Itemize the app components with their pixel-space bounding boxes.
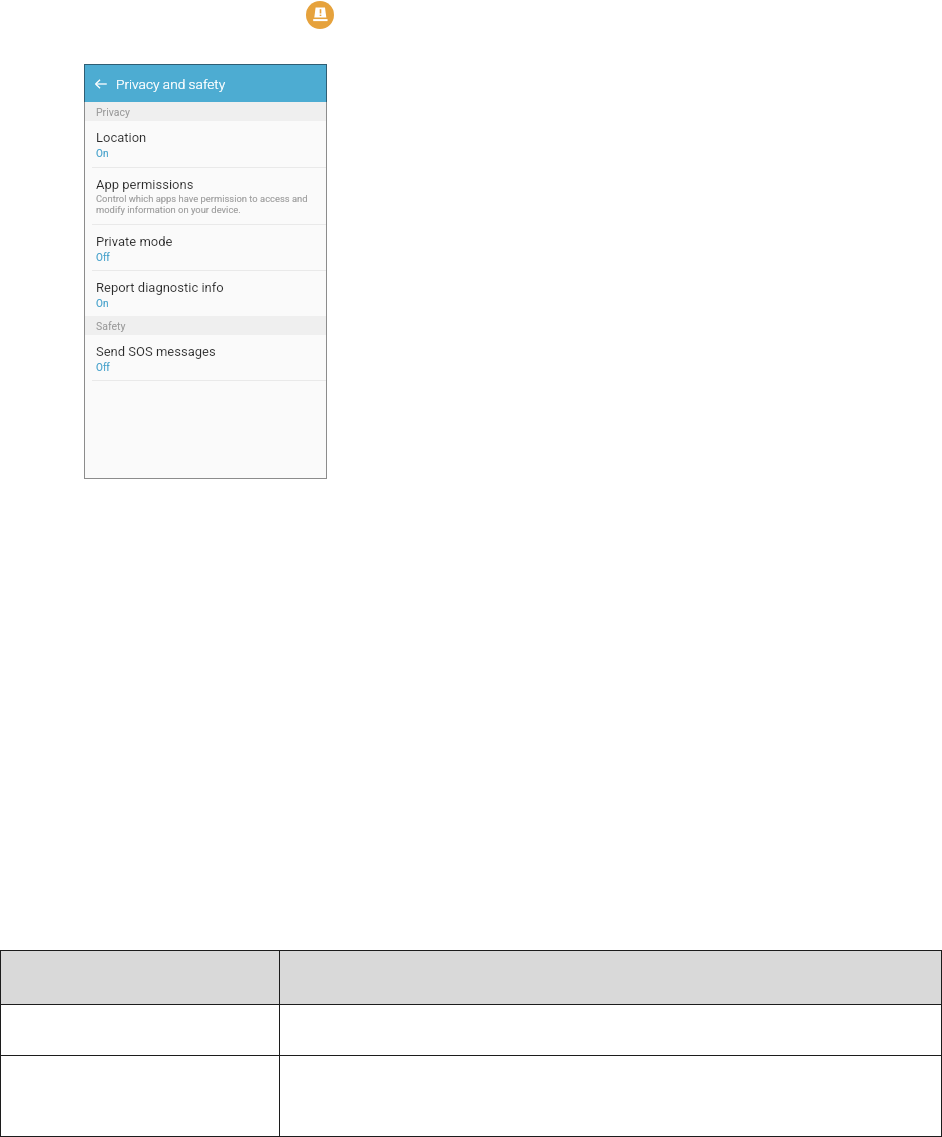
- staticText: On: [96, 148, 109, 160]
- staticText: Off: [96, 252, 110, 264]
- button[interactable]: Location: [85, 121, 326, 167]
- staticText: Privacy: [96, 106, 130, 118]
- staticText: Report diagnostic info: [96, 280, 224, 295]
- button[interactable]: Send SOS messages: [85, 335, 326, 380]
- staticText: Safety: [96, 320, 126, 332]
- button[interactable]: Emergency alert: [306, 1, 334, 29]
- button[interactable]: Back: [85, 65, 326, 102]
- staticText: On: [96, 298, 109, 310]
- button[interactable]: Back: [85, 65, 116, 102]
- staticText: Privacy and safety: [116, 76, 226, 92]
- staticText: Private mode: [96, 234, 173, 249]
- staticText: Send SOS messages: [96, 344, 216, 359]
- staticText: App permissions: [96, 177, 194, 192]
- staticText: Off: [96, 362, 110, 374]
- button[interactable]: App permissions: [85, 168, 326, 224]
- staticText: Location: [96, 130, 147, 145]
- button[interactable]: Report diagnostic info: [85, 271, 326, 316]
- staticText: Control which apps have permission to ac…: [96, 193, 308, 215]
- button[interactable]: Private mode: [85, 225, 326, 270]
